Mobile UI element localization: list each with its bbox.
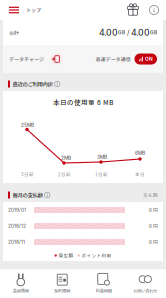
- staticText: 毎月の支払額: [12, 191, 42, 199]
- staticText: 合計: [9, 29, 19, 36]
- staticText: /: [125, 28, 131, 37]
- staticText: 本日の使用量 6 MB: [53, 97, 113, 107]
- staticText: 6MB: [135, 150, 145, 156]
- button[interactable]: お問い合わせ: [124, 269, 166, 297]
- staticText: 0 円: [149, 222, 158, 229]
- staticText: 本日: [135, 171, 145, 178]
- button[interactable]: メニュー: [2, 0, 26, 20]
- staticText: 4.00: [131, 27, 150, 38]
- staticText: ON: [145, 56, 153, 62]
- staticText: 2018/12: [8, 223, 26, 229]
- staticText: 25MB: [21, 122, 34, 128]
- button[interactable]: 契約情報: [41, 269, 83, 297]
- staticText: 3日前: [21, 171, 34, 178]
- staticText: 2018/11: [8, 239, 25, 245]
- staticText: 1日前: [95, 171, 108, 178]
- staticText: 会員情報: [13, 288, 29, 294]
- staticText: 契約情報: [54, 288, 70, 294]
- staticText: 2日前: [58, 171, 71, 178]
- staticText: GB: [150, 30, 157, 35]
- staticText: 2019/01: [8, 207, 26, 213]
- staticText: お問い合わせ: [133, 288, 157, 294]
- staticText: 支払額: [143, 192, 158, 198]
- staticText: トップ: [26, 6, 41, 14]
- staticText: 高速データ通信: [95, 55, 130, 63]
- staticText: 0 円: [149, 206, 158, 213]
- button[interactable]: 会員情報: [0, 269, 41, 297]
- staticText: 2MB: [61, 155, 71, 161]
- button[interactable]: お知らせ: [147, 0, 161, 20]
- staticText: 0 円: [149, 238, 158, 245]
- button[interactable]: ON: [134, 53, 157, 64]
- staticText: 3MB: [97, 154, 107, 160]
- staticText: ポイント利用: [81, 252, 111, 259]
- staticText: 直近のご利用内訳: [12, 80, 52, 88]
- button[interactable]: データチャージ: [50, 52, 63, 65]
- staticText: 料金明細: [96, 288, 112, 294]
- staticText: 発生額: [58, 252, 73, 259]
- staticText: 4.00: [99, 27, 118, 38]
- staticText: GB: [118, 30, 125, 35]
- button[interactable]: プレゼント: [125, 0, 141, 20]
- button[interactable]: 料金明細: [83, 269, 124, 297]
- staticText: データチャージ: [9, 55, 44, 63]
